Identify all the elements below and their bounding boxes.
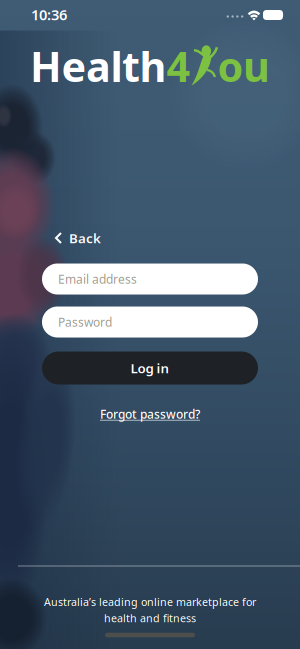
staticText: Health: [30, 39, 166, 93]
staticText: Back: [69, 229, 101, 247]
staticText: 10:36: [31, 5, 67, 24]
secureTextField[interactable]: Password: [58, 314, 258, 330]
button[interactable]: Log in: [42, 351, 258, 384]
staticText: ou: [217, 39, 270, 93]
button[interactable]: Forgot password?: [100, 406, 200, 422]
staticText: Australia’s leading online marketplace f…: [44, 595, 256, 609]
staticText: 4: [166, 39, 190, 93]
button[interactable]: Back: [55, 229, 101, 247]
staticText: health and fitness: [104, 611, 196, 625]
staticText: Log in: [130, 359, 169, 377]
staticText: Password: [58, 314, 112, 330]
staticText: Email address: [58, 271, 137, 287]
textField[interactable]: Email address: [58, 271, 258, 287]
staticText: Forgot password?: [100, 406, 200, 422]
